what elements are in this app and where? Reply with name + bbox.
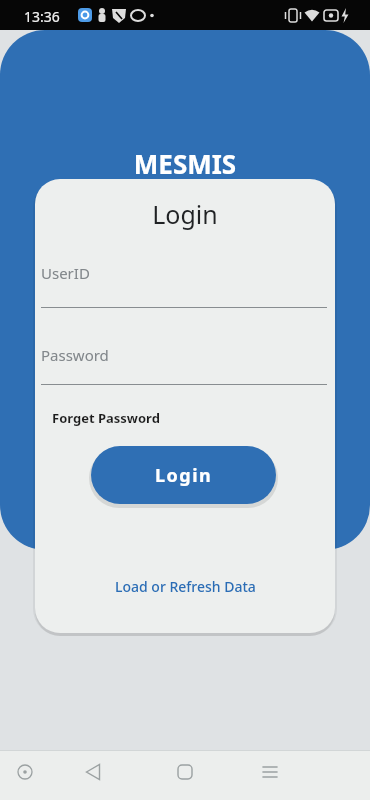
staticText: Password <box>41 345 109 365</box>
button[interactable]: Login <box>91 446 276 504</box>
staticText: MESMIS <box>0 146 370 181</box>
button[interactable]: Load or Refresh Data <box>35 571 335 602</box>
staticText: UserID <box>41 263 90 283</box>
staticText: Forget Password <box>52 409 160 427</box>
staticText: Login <box>155 463 213 488</box>
staticText: Login <box>35 197 335 231</box>
staticText: 13:36 <box>24 7 60 26</box>
button[interactable] <box>0 750 124 800</box>
button[interactable]: Forget Password <box>45 403 167 433</box>
staticText: Load or Refresh Data <box>115 577 256 596</box>
button[interactable] <box>247 750 370 800</box>
button[interactable] <box>124 750 247 800</box>
